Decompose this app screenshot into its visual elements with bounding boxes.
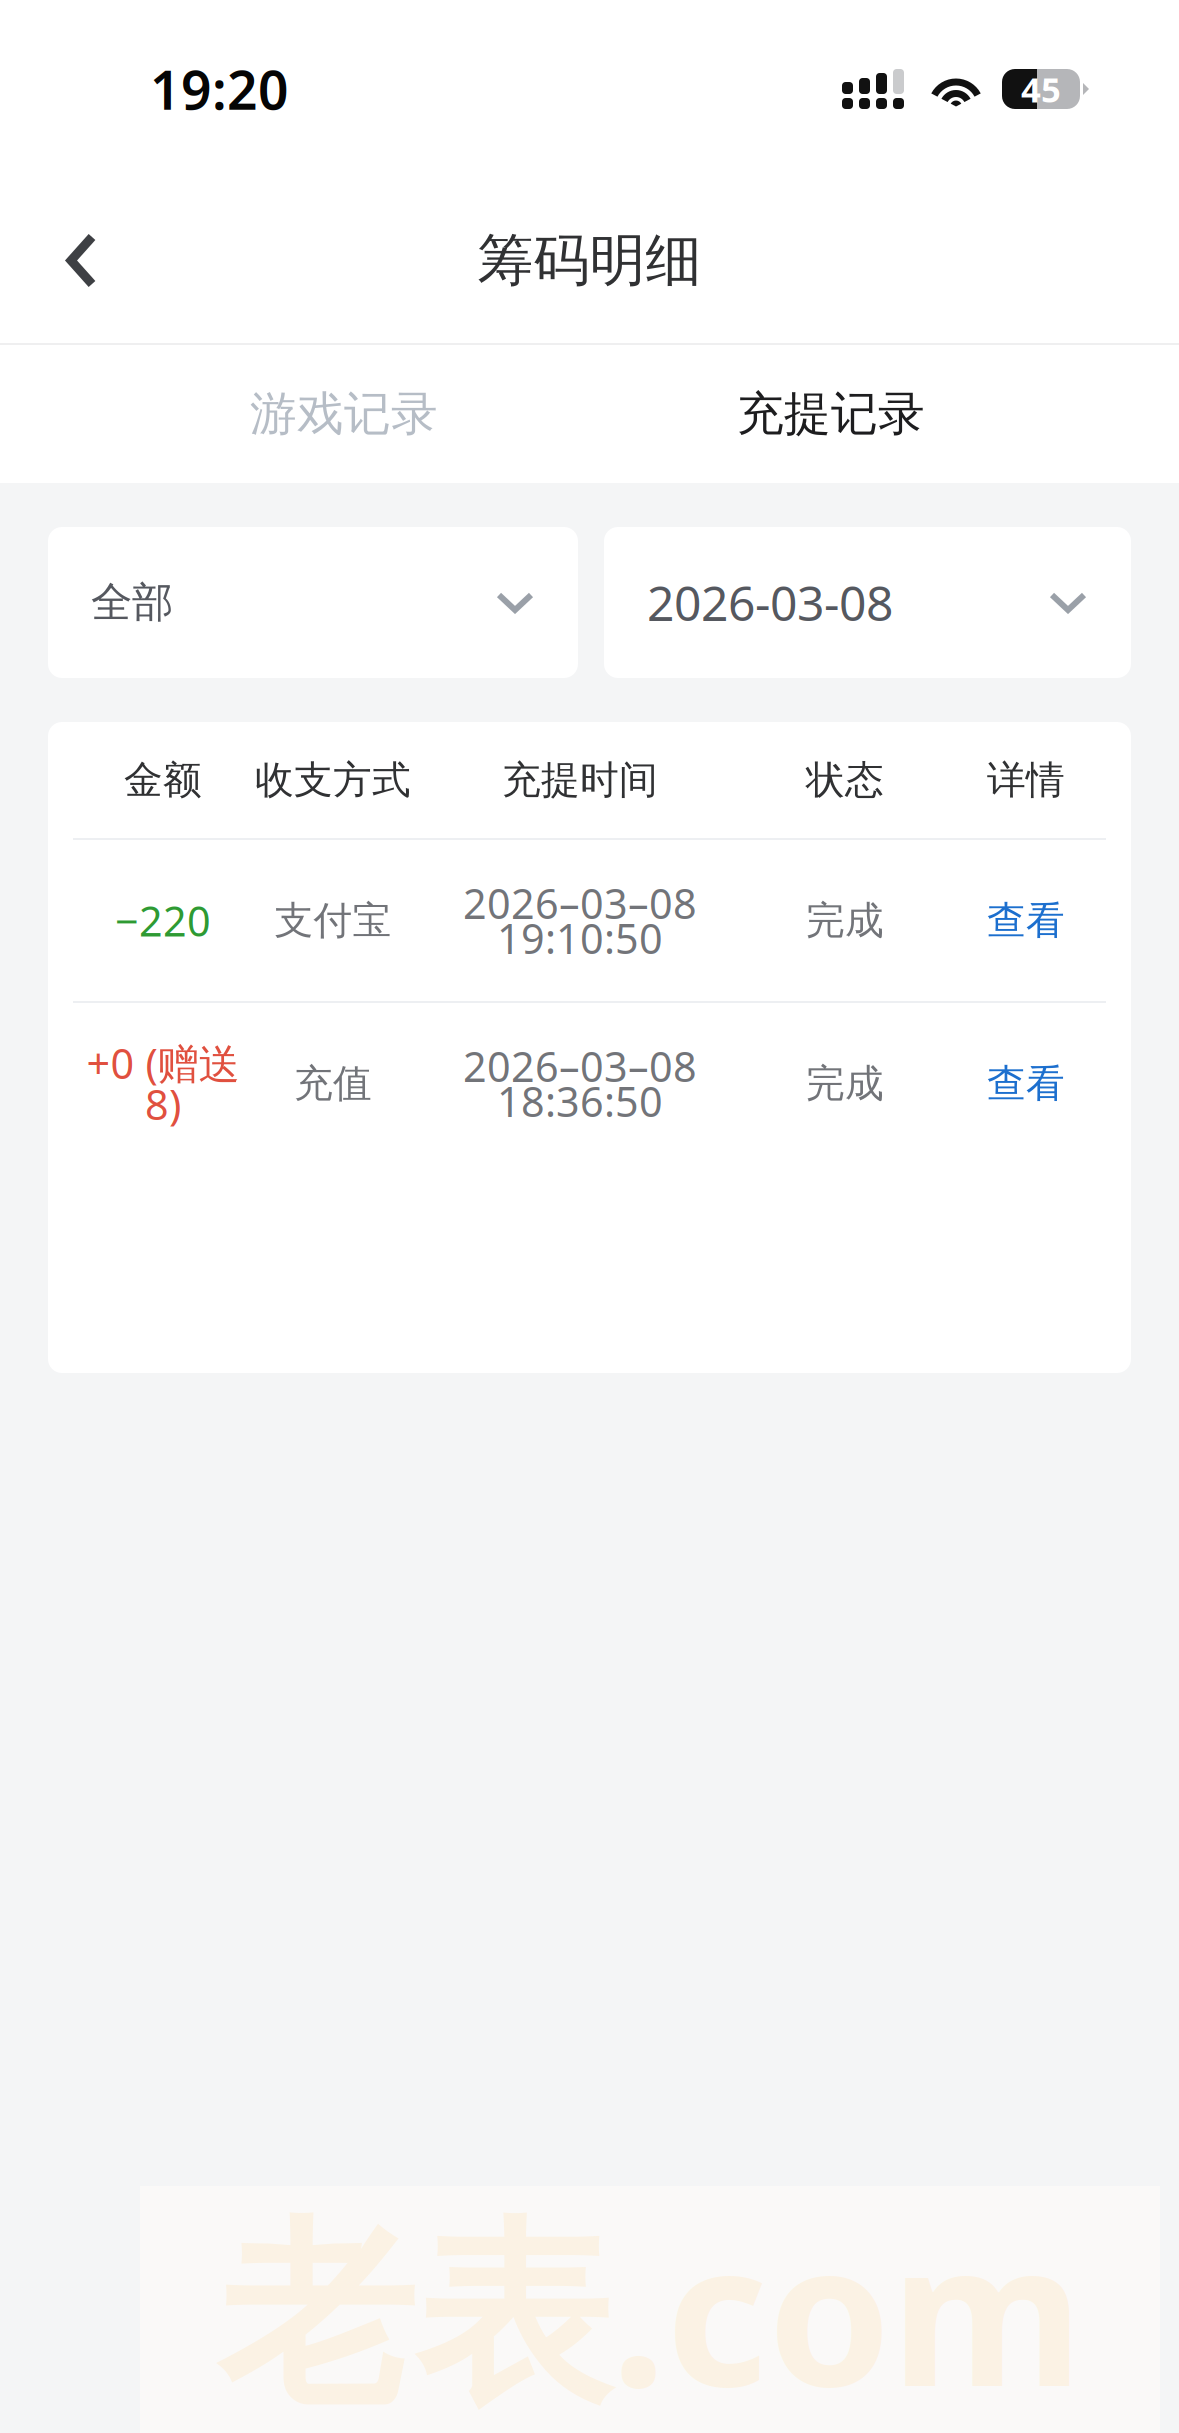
staticText: 查看	[987, 1060, 1065, 1107]
staticText: 游戏记录	[250, 385, 438, 443]
staticText: 完成	[806, 897, 884, 944]
staticText: 19:10:50	[497, 910, 663, 965]
button[interactable]: Back	[0, 178, 163, 343]
staticText: 金额	[124, 756, 202, 804]
staticText: 充提时间	[502, 756, 658, 804]
staticText: −220	[115, 893, 211, 948]
staticText: 8)	[145, 1076, 181, 1131]
button[interactable]: 2026-03-08	[604, 527, 1131, 678]
button[interactable]: 查看	[951, 840, 1101, 1001]
staticText: 支付宝	[274, 897, 391, 944]
staticText: 查看	[987, 897, 1065, 944]
button[interactable]: 全部	[48, 527, 578, 678]
staticText: 全部	[91, 577, 173, 628]
staticText: 详情	[987, 756, 1065, 804]
staticText: 充值	[294, 1060, 372, 1107]
staticText: 2026-03-08	[647, 571, 893, 634]
staticText: 充提记录	[737, 385, 925, 443]
staticText: 2026–03–08	[463, 1039, 697, 1093]
staticText: 18:36:50	[497, 1073, 663, 1128]
staticText: 2026–03–08	[463, 876, 697, 930]
button[interactable]: 充提记录	[591, 345, 1071, 483]
staticText: 状态	[806, 756, 884, 804]
staticText: 45	[1021, 66, 1061, 112]
staticText: 老表.com	[217, 2178, 1083, 2433]
button[interactable]: 游戏记录	[104, 345, 584, 483]
staticText: 收支方式	[255, 756, 411, 804]
staticText: 19:20	[150, 54, 289, 124]
staticText: +0 (赠送	[86, 1036, 239, 1090]
button[interactable]: 查看	[951, 1003, 1101, 1164]
staticText: 筹码明细	[477, 226, 701, 295]
staticText: 完成	[806, 1060, 884, 1107]
